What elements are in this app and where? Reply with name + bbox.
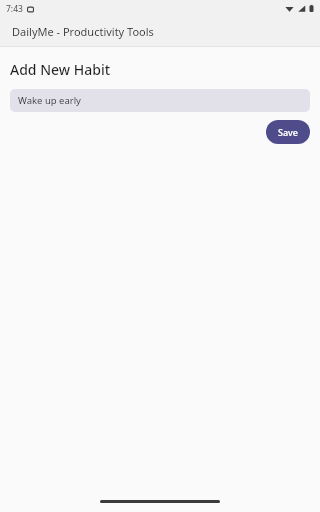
staticText: Wake up early	[18, 94, 81, 107]
button[interactable]: Save	[266, 120, 310, 144]
staticText: 7:43	[6, 3, 23, 15]
button[interactable]: Wake up early	[10, 89, 310, 112]
staticText: Add New Habit	[10, 60, 111, 79]
staticText: Save	[278, 126, 299, 138]
staticText: DailyMe - Productivity Tools	[12, 24, 154, 39]
